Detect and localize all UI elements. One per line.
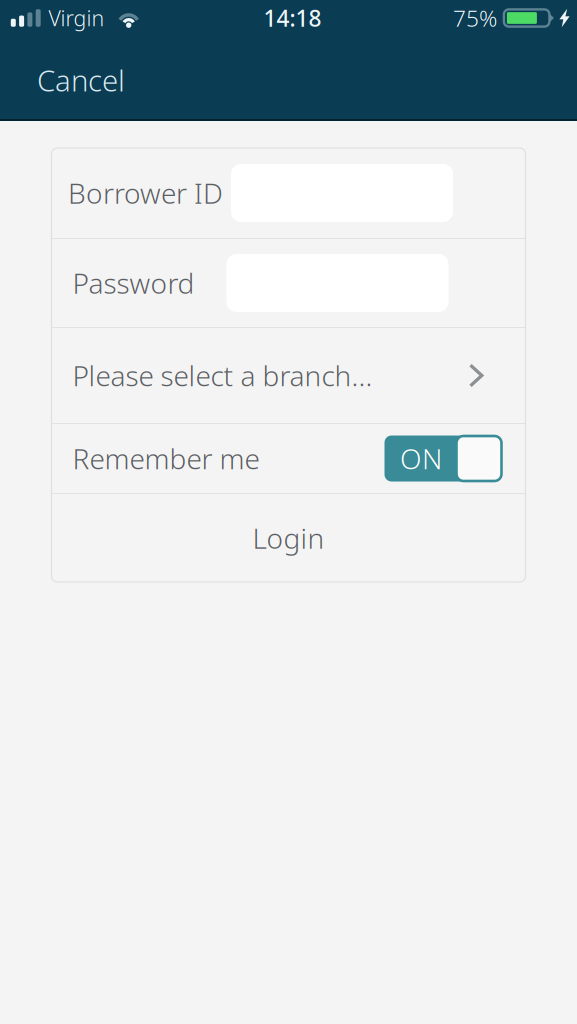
staticText: Remember me [72, 440, 259, 477]
staticText: Borrower ID [68, 174, 223, 212]
staticText: 14:18 [263, 3, 321, 33]
staticText: Login [252, 519, 324, 557]
staticText: 75% [453, 3, 497, 33]
staticText: Password [72, 264, 194, 302]
button[interactable]: Please select a branch... [51, 328, 525, 423]
button[interactable]: Login [51, 494, 525, 582]
staticText: Virgin [48, 4, 104, 32]
staticText: ON [400, 440, 442, 477]
button[interactable]: Cancel [0, 43, 145, 111]
button[interactable]: ON [384, 435, 501, 481]
staticText: Cancel [37, 60, 125, 99]
staticText: Please select a branch... [72, 357, 372, 394]
